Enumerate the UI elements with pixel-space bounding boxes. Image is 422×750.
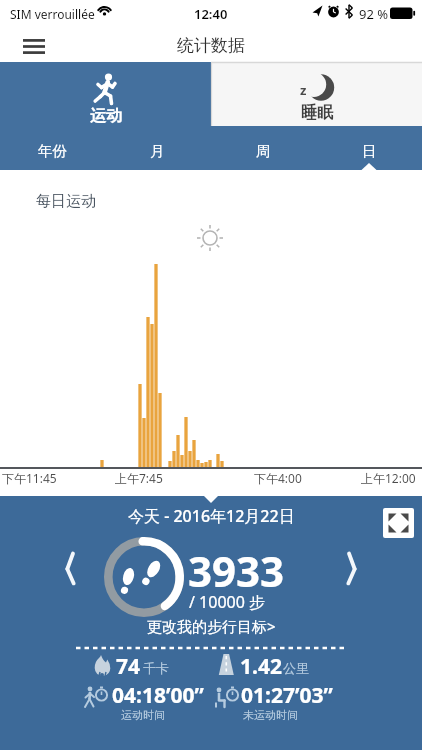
staticText: 日 xyxy=(362,142,377,160)
staticText: 运动 xyxy=(90,106,122,126)
staticText: 每日运动 xyxy=(36,192,96,211)
button[interactable]: 月 xyxy=(105,126,210,170)
staticText: 睡眠 xyxy=(301,103,333,123)
staticText: 下午4:00 xyxy=(254,470,302,486)
staticText: 下午11:45 xyxy=(2,470,57,486)
staticText: 1.42 xyxy=(240,652,282,681)
staticText: 01:27’03” xyxy=(241,681,333,710)
staticText: 12:40 xyxy=(194,5,228,23)
staticText: SIM verrouillée xyxy=(10,6,95,22)
button[interactable]: 年份 xyxy=(0,126,105,170)
button[interactable]: z xyxy=(211,62,422,126)
staticText: 统计数据 xyxy=(177,35,245,56)
staticText: 年份 xyxy=(38,142,67,160)
staticText: 运动时间 xyxy=(121,708,165,722)
staticText: 92 % xyxy=(359,5,389,23)
staticText: 74 xyxy=(116,652,141,681)
button[interactable] xyxy=(383,508,414,538)
staticText: 上午7:45 xyxy=(115,470,163,486)
button[interactable]: 日 xyxy=(316,126,422,170)
button[interactable] xyxy=(55,548,91,592)
staticText: 今天 - 2016年12月22日 xyxy=(128,505,295,527)
staticText: 更改我的步行目标> xyxy=(147,616,276,636)
staticText: 月 xyxy=(150,142,165,160)
staticText: 上午12:00 xyxy=(361,470,416,486)
button[interactable]: 更改我的步行目标> xyxy=(0,611,422,641)
staticText: 3933 xyxy=(188,542,285,599)
button[interactable]: 运动 xyxy=(0,62,211,126)
staticText: / 10000 步 xyxy=(189,591,266,613)
staticText: 周 xyxy=(256,142,271,160)
staticText: z xyxy=(300,81,307,99)
button[interactable]: 周 xyxy=(210,126,316,170)
staticText: 千卡 xyxy=(143,660,169,676)
button[interactable] xyxy=(334,548,370,592)
button[interactable] xyxy=(17,32,51,60)
staticText: 04:18’00” xyxy=(112,681,204,710)
staticText: 未运动时间 xyxy=(243,708,298,722)
staticText: 公里 xyxy=(283,660,309,676)
